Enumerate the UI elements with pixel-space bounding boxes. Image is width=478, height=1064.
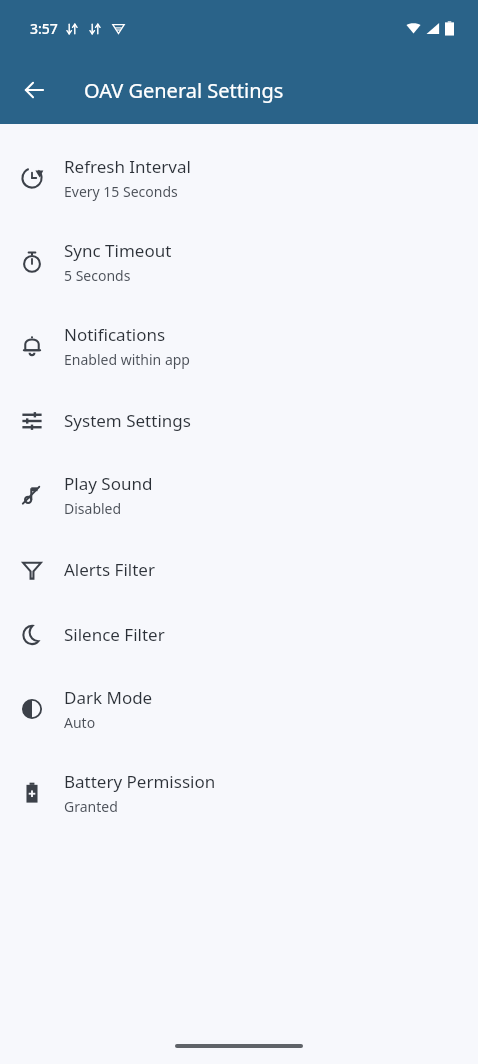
staticText: OAV General Settings	[84, 77, 284, 104]
staticText: Sync Timeout	[64, 239, 172, 262]
button[interactable]: Back	[10, 66, 58, 114]
staticText: Auto	[64, 713, 96, 732]
staticText: Battery Permission	[64, 770, 216, 793]
button[interactable]: Refresh Interval	[0, 136, 478, 220]
staticText: Silence Filter	[64, 623, 165, 646]
staticText: Dark Mode	[64, 686, 153, 709]
staticText: Refresh Interval	[64, 155, 191, 178]
button[interactable]: Notifications	[0, 304, 478, 388]
button[interactable]: Silence Filter	[0, 602, 478, 667]
staticText: 3:57	[30, 19, 58, 38]
button[interactable]: Dark Mode	[0, 667, 478, 751]
button[interactable]: Alerts Filter	[0, 537, 478, 602]
button[interactable]: Play Sound	[0, 453, 478, 537]
staticText: Disabled	[64, 499, 122, 518]
staticText: Alerts Filter	[64, 558, 155, 581]
button[interactable]: Battery Permission	[0, 751, 478, 835]
staticText: Notifications	[64, 323, 166, 346]
staticText: Every 15 Seconds	[64, 182, 178, 201]
staticText: Granted	[64, 797, 118, 816]
staticText: Play Sound	[64, 472, 153, 495]
staticText: 5 Seconds	[64, 266, 131, 285]
button[interactable]: Sync Timeout	[0, 220, 478, 304]
staticText: System Settings	[64, 409, 191, 432]
button[interactable]: System Settings	[0, 388, 478, 453]
staticText: Enabled within app	[64, 350, 190, 369]
